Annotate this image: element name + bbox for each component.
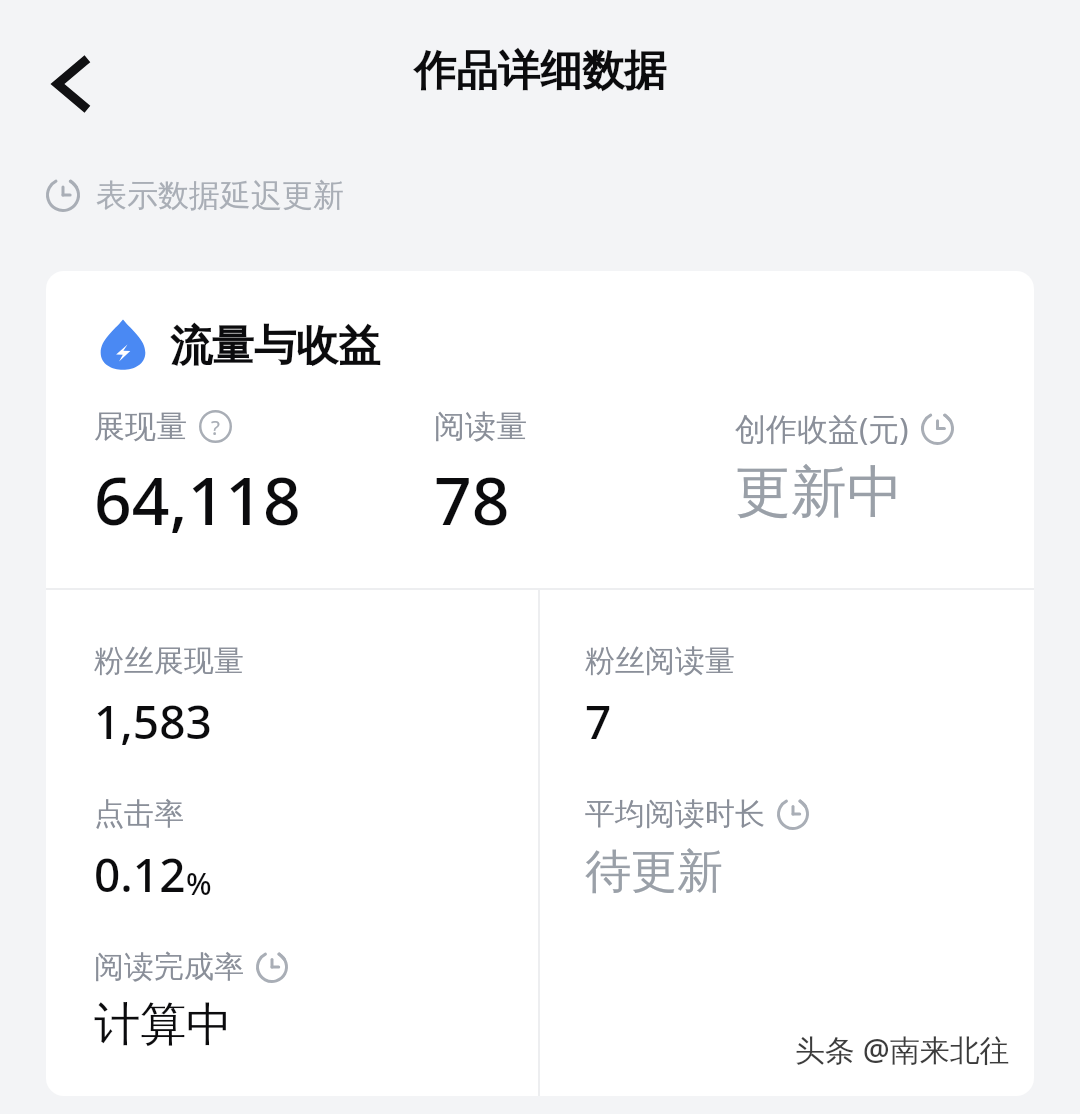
staticText: 78 [434,454,510,544]
staticText: 展现量 [94,407,187,446]
staticText: 阅读完成率 [94,948,244,986]
button[interactable]: 粉丝阅读量 [585,642,1034,753]
button[interactable]: 点击率 [94,795,538,906]
button[interactable]: 阅读完成率 [94,948,538,1054]
staticText: 创作收益(元) [735,407,909,449]
button[interactable]: 阅读量 [434,407,735,544]
staticText: 点击率 [94,795,184,833]
staticText: 64,118 [94,454,301,544]
button[interactable]: 创作收益(元) [735,407,954,528]
staticText: 计算中 [94,996,232,1054]
staticText: 流量与收益 [170,320,380,373]
staticText: 粉丝阅读量 [585,642,735,680]
staticText: % [186,863,212,904]
staticText: 作品详细数据 [414,45,666,98]
staticText: ? [211,413,220,441]
staticText: 头条 @南来北往 [795,1029,1010,1070]
staticText: 1,583 [94,690,212,753]
button[interactable]: 粉丝展现量 [94,642,538,753]
staticText: 0.12 [94,843,186,906]
staticText: 阅读量 [434,407,527,446]
button[interactable]: Back [24,38,116,130]
staticText: 更新中 [735,457,903,528]
button[interactable]: 展现量 [94,407,434,544]
staticText: 待更新 [585,843,723,901]
staticText: 表示数据延迟更新 [96,176,344,215]
staticText: 平均阅读时长 [585,795,765,833]
staticText: 粉丝展现量 [94,642,244,680]
button[interactable]: 平均阅读时长 [585,795,1034,901]
staticText: 7 [585,690,612,753]
